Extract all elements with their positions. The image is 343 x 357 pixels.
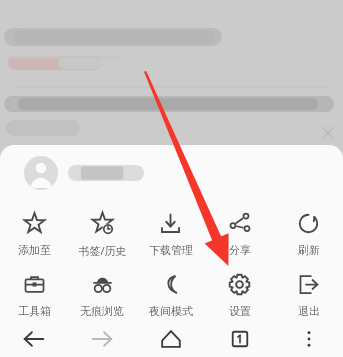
button[interactable]: Forward xyxy=(68,320,136,357)
staticText: 下载管理 xyxy=(149,243,193,257)
button[interactable]: 夜间模式 xyxy=(136,270,205,320)
staticText: 夜间模式 xyxy=(149,304,193,318)
button[interactable]: 工具箱 xyxy=(0,270,68,320)
button[interactable]: Back xyxy=(0,320,68,357)
staticText: 无痕浏览 xyxy=(80,304,124,318)
button[interactable]: Tabs xyxy=(205,320,274,357)
button[interactable]: 书签/历史 xyxy=(68,209,136,260)
button[interactable]: 添加至 xyxy=(0,209,68,259)
button[interactable]: 刷新 xyxy=(274,209,343,259)
staticText: 添加至 xyxy=(18,243,51,257)
button[interactable]: 设置 xyxy=(205,270,274,320)
staticText: 书签/历史 xyxy=(78,243,127,258)
staticText: 工具箱 xyxy=(18,304,51,318)
staticText: 分享 xyxy=(229,243,251,257)
button[interactable]: 下载管理 xyxy=(136,209,205,259)
staticText: 退出 xyxy=(298,304,320,318)
button[interactable]: 退出 xyxy=(274,270,343,320)
button[interactable] xyxy=(0,145,343,201)
button[interactable]: Home xyxy=(136,320,205,357)
button[interactable]: 无痕浏览 xyxy=(68,270,136,320)
button[interactable]: Menu xyxy=(274,320,343,357)
button[interactable]: 分享 xyxy=(205,209,274,259)
staticText: 设置 xyxy=(229,304,251,318)
staticText: 刷新 xyxy=(298,243,320,257)
